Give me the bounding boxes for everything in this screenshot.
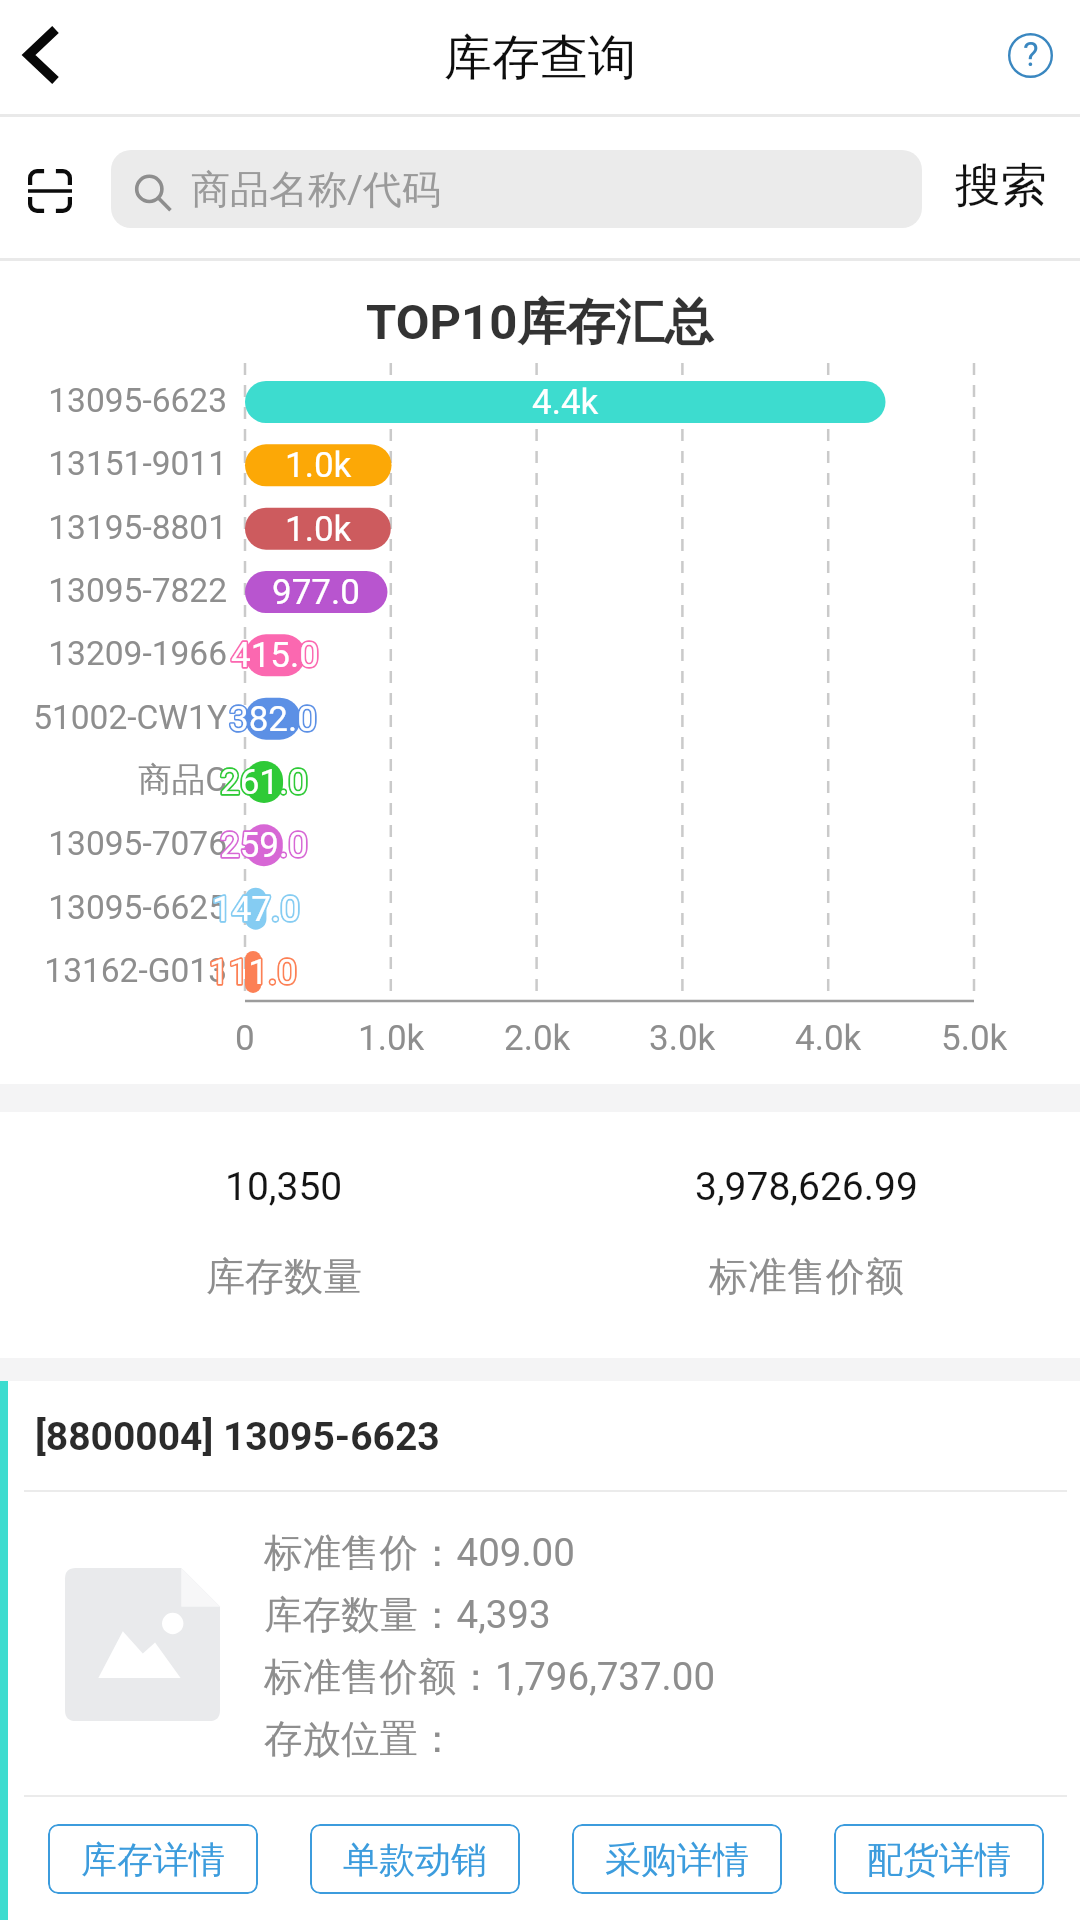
button[interactable]: 单款动销: [310, 1824, 520, 1894]
button[interactable]: Scan barcode: [0, 117, 111, 261]
button[interactable]: 搜索: [922, 117, 1080, 258]
button[interactable]: Back: [0, 0, 95, 117]
staticText: 标准售价额：1,796,737.00: [264, 1653, 716, 1702]
staticText: 51002-CW1Y: [33, 698, 227, 737]
staticText: 977.0: [272, 572, 360, 613]
staticText: 3,978,626.99: [695, 1164, 918, 1210]
staticText: 147.0: [212, 889, 300, 930]
staticText: 库存详情: [81, 1837, 225, 1882]
button[interactable]: 商品名称/代码: [111, 150, 922, 228]
button[interactable]: 3,978,626.99: [545, 1112, 1067, 1358]
staticText: TOP10库存汇总: [366, 292, 714, 354]
staticText: 商品名称/代码: [191, 165, 442, 214]
staticText: 13095-6625: [48, 888, 227, 927]
staticText: 2.0k: [504, 1018, 571, 1059]
staticText: 10,350: [225, 1164, 343, 1210]
staticText: 标准售价：409.00: [264, 1529, 575, 1578]
staticText: ?: [1023, 35, 1039, 74]
staticText: 1.0k: [358, 1018, 425, 1059]
staticText: 商品C: [138, 759, 227, 801]
button[interactable]: 库存详情: [48, 1824, 258, 1894]
staticText: 5.0k: [941, 1018, 1008, 1059]
staticText: 4.0k: [795, 1018, 862, 1059]
staticText: 111.0: [209, 952, 297, 993]
staticText: [8800004] 13095-6623: [35, 1414, 440, 1460]
staticText: 13162-G013: [44, 951, 227, 990]
staticText: 259.0: [220, 825, 308, 866]
staticText: 13095-7822: [48, 571, 227, 610]
staticText: 4.4k: [532, 382, 599, 423]
button[interactable]: 采购详情: [572, 1824, 782, 1894]
staticText: 存放位置：: [264, 1715, 457, 1764]
staticText: 13151-9011: [48, 444, 227, 483]
staticText: 采购详情: [605, 1837, 749, 1882]
staticText: 库存查询: [444, 28, 636, 88]
staticText: 1.0k: [285, 509, 352, 550]
staticText: 111.0: [209, 952, 297, 993]
staticText: 261.0: [220, 762, 308, 803]
staticText: 415.0: [231, 635, 319, 676]
staticText: 1.0k: [285, 509, 352, 550]
staticText: 搜索: [955, 157, 1047, 215]
button[interactable]: Help: [980, 0, 1080, 117]
staticText: 4.4k: [532, 382, 599, 423]
button[interactable]: 配货详情: [834, 1824, 1044, 1894]
staticText: 147.0: [212, 889, 300, 930]
staticText: 3.0k: [649, 1018, 716, 1059]
staticText: 382.0: [229, 699, 317, 740]
staticText: 977.0: [272, 572, 360, 613]
staticText: 13095-6623: [48, 381, 227, 420]
staticText: 261.0: [220, 762, 308, 803]
staticText: 0: [235, 1018, 255, 1059]
staticText: 13095-7076: [48, 824, 227, 863]
staticText: 库存数量: [206, 1252, 362, 1301]
staticText: 382.0: [229, 699, 317, 740]
staticText: 13195-8801: [48, 508, 227, 547]
staticText: 库存数量：4,393: [264, 1591, 551, 1640]
staticText: 13209-1966: [48, 634, 227, 673]
staticText: 1.0k: [285, 445, 352, 486]
staticText: 415.0: [231, 635, 319, 676]
staticText: 1.0k: [285, 445, 352, 486]
staticText: 单款动销: [343, 1837, 487, 1882]
staticText: 标准售价额: [709, 1252, 904, 1301]
button[interactable]: 10,350: [23, 1112, 545, 1358]
staticText: 配货详情: [867, 1837, 1011, 1882]
staticText: 259.0: [220, 825, 308, 866]
